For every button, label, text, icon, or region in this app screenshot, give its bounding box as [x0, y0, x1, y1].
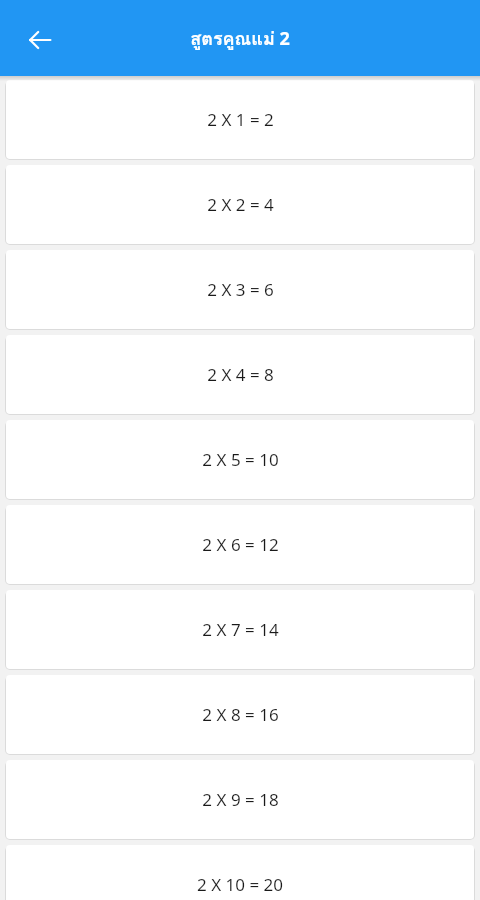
staticText: 2 X 7 = 14	[202, 618, 279, 641]
staticText: 2 X 6 = 12	[202, 533, 279, 556]
button[interactable]: 2 X 4 = 8	[6, 335, 474, 414]
button[interactable]: 2 X 9 = 18	[6, 760, 474, 839]
staticText: 2 X 8 = 16	[202, 703, 279, 726]
staticText: 2 X 5 = 10	[202, 448, 279, 471]
button[interactable]: 2 X 10 = 20	[6, 845, 474, 900]
staticText: 2 X 3 = 6	[207, 278, 274, 301]
staticText: 2 X 2 = 4	[207, 193, 274, 216]
button[interactable]: 2 X 8 = 16	[6, 675, 474, 754]
button[interactable]: 2 X 5 = 10	[6, 420, 474, 499]
button[interactable]: 2 X 2 = 4	[6, 165, 474, 244]
button[interactable]: 2 X 6 = 12	[6, 505, 474, 584]
staticText: สูตรคูณแม่ 2	[0, 24, 480, 53]
staticText: 2 X 10 = 20	[197, 873, 283, 896]
button[interactable]: 2 X 1 = 2	[6, 80, 474, 159]
staticText: 2 X 9 = 18	[202, 788, 279, 811]
staticText: 2 X 1 = 2	[207, 108, 274, 131]
staticText: 2 X 4 = 8	[207, 363, 274, 386]
button[interactable]: 2 X 7 = 14	[6, 590, 474, 669]
button[interactable]: 2 X 3 = 6	[6, 250, 474, 329]
button[interactable]: Back	[16, 16, 64, 64]
